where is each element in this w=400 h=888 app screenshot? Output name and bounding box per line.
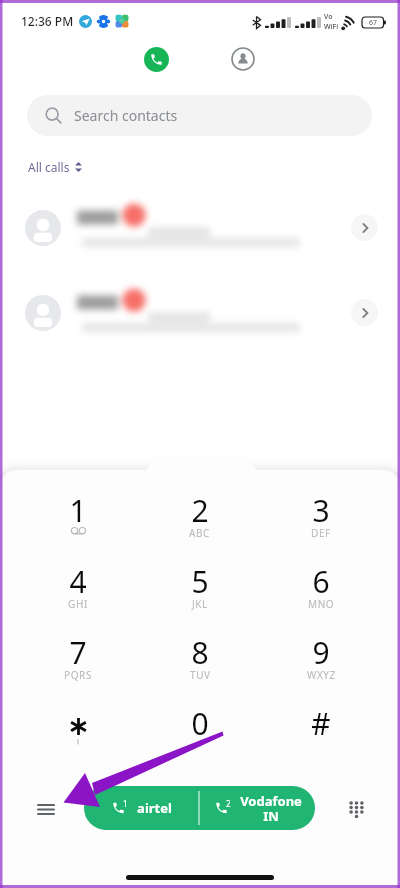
staticText: 9: [312, 632, 330, 673]
staticText: ABC: [189, 526, 211, 540]
staticText: 5: [191, 561, 209, 602]
staticText: 2: [226, 798, 231, 809]
staticText: MNO: [308, 597, 335, 611]
button[interactable]: Recent calls tab: [134, 37, 178, 81]
staticText: 1: [69, 490, 87, 531]
staticText: 3: [312, 490, 330, 531]
button[interactable]: 7: [47, 630, 109, 688]
button[interactable]: 5: [169, 559, 231, 617]
button[interactable]: 3: [290, 488, 352, 546]
staticText: 1: [123, 798, 128, 809]
staticText: airtel: [137, 799, 172, 817]
button[interactable]: 1: [47, 488, 109, 546]
button[interactable]: [47, 701, 109, 759]
staticText: DEF: [311, 526, 331, 540]
staticText: PQRS: [64, 668, 92, 682]
staticText: All calls: [28, 159, 70, 175]
button[interactable]: 8: [169, 630, 231, 688]
button[interactable]: All calls: [24, 157, 86, 177]
button[interactable]: Search contacts: [27, 95, 372, 136]
staticText: 0: [191, 703, 209, 744]
button[interactable]: 2: [169, 488, 231, 546]
button[interactable]: Call details: [351, 299, 378, 326]
button[interactable]: 2: [200, 786, 315, 830]
button[interactable]: Contacts tab: [221, 37, 265, 81]
staticText: 6: [312, 561, 330, 602]
staticText: #: [311, 703, 331, 744]
button[interactable]: Menu: [30, 793, 62, 825]
staticText: Search contacts: [74, 106, 178, 125]
button[interactable]: 4: [47, 559, 109, 617]
button[interactable]: 6: [290, 559, 352, 617]
button[interactable]: Dialpad: [340, 793, 372, 825]
button[interactable]: 0: [169, 701, 231, 759]
button[interactable]: 9: [290, 630, 352, 688]
button[interactable]: 1: [84, 786, 198, 830]
staticText: GHI: [68, 597, 88, 611]
staticText: 8: [191, 632, 209, 673]
staticText: 12:36 PM: [21, 13, 74, 29]
staticText: 7: [69, 632, 87, 673]
staticText: 2: [191, 490, 209, 531]
staticText: TUV: [190, 668, 211, 682]
staticText: Vo: [324, 12, 333, 22]
staticText: WXYZ: [307, 668, 336, 682]
staticText: JKL: [192, 597, 208, 611]
staticText: 67: [369, 18, 378, 28]
button[interactable]: Call details: [0, 195, 400, 260]
staticText: Vodafone IN: [240, 792, 302, 825]
button[interactable]: Call details: [0, 280, 400, 345]
staticText: WiFi: [324, 22, 339, 32]
staticText: 4: [69, 561, 87, 602]
button[interactable]: Call details: [351, 214, 378, 241]
button[interactable]: #: [290, 701, 352, 759]
